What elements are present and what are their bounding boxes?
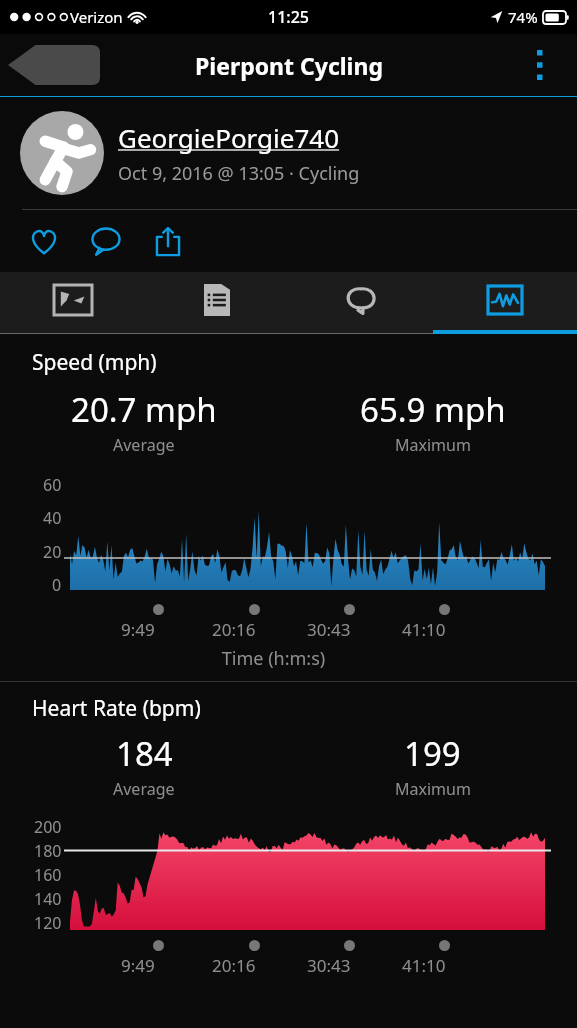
button[interactable]: Comment [84, 219, 128, 263]
staticText: 30:43 [307, 954, 351, 977]
button[interactable]: GeorgiePorgie740 [118, 120, 340, 155]
staticText: 41:10 [402, 618, 446, 641]
button[interactable]: Charts [433, 272, 577, 334]
staticText: Average [113, 778, 175, 800]
staticText: 9:49 [121, 618, 155, 641]
staticText: 20:16 [212, 618, 256, 641]
staticText: 199 [404, 731, 461, 776]
staticText: 9:49 [121, 954, 155, 977]
staticText: Verizon [70, 7, 123, 27]
staticText: 20 [43, 541, 62, 563]
staticText: GeorgiePorgie740 [118, 120, 340, 155]
staticText: Heart Rate (bpm) [32, 694, 201, 723]
staticText: Maximum [395, 778, 471, 800]
button[interactable]: Laps [289, 272, 433, 334]
button[interactable]: Back [8, 45, 100, 85]
staticText: 140 [34, 888, 62, 910]
button[interactable]: Details [145, 272, 289, 334]
staticText: Time (h:m:s) [0, 646, 547, 671]
staticText: 0 [52, 574, 62, 596]
staticText: 20:16 [212, 954, 256, 977]
staticText: Oct 9, 2016 @ 13:05 · Cycling [118, 161, 360, 186]
staticText: 65.9 mph [360, 387, 506, 432]
staticText: 60 [43, 474, 62, 496]
button[interactable]: Share [146, 219, 190, 263]
button[interactable]: Like [22, 219, 66, 263]
staticText: 160 [34, 864, 62, 886]
staticText: Speed (mph) [32, 348, 157, 377]
staticText: 30:43 [307, 618, 351, 641]
staticText: Maximum [395, 434, 471, 456]
staticText: 40 [43, 507, 62, 529]
button[interactable]: More options [525, 44, 555, 86]
staticText: 74% [508, 7, 538, 27]
staticText: 41:10 [402, 954, 446, 977]
staticText: 120 [34, 912, 62, 934]
staticText: 184 [116, 731, 173, 776]
staticText: Pierpont Cycling [195, 50, 383, 81]
staticText: 20.7 mph [71, 387, 217, 432]
staticText: 180 [34, 840, 62, 862]
staticText: 200 [34, 816, 62, 838]
button[interactable]: Map [0, 272, 145, 334]
staticText: 11:25 [268, 6, 309, 28]
staticText: Average [113, 434, 175, 456]
